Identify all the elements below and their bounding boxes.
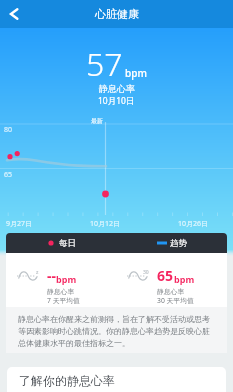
- staticText: --: [47, 266, 56, 285]
- staticText: bpm: [174, 273, 195, 285]
- button[interactable]: z: [6, 253, 116, 307]
- staticText: 每日: [59, 238, 76, 249]
- staticText: 30 天平均值: [157, 296, 194, 305]
- staticText: 65: [157, 266, 174, 285]
- staticText: 10月26日: [178, 219, 209, 229]
- staticText: 心脏健康: [95, 7, 139, 21]
- staticText: 静息心率在你醒来之前测得，旨在了解不受活动或思考等因素影响时心跳情况。你的静息心…: [18, 314, 211, 348]
- staticText: 30: [143, 269, 149, 276]
- staticText: 9月27日: [6, 219, 33, 229]
- staticText: 57: [86, 42, 123, 86]
- staticText: 趋势: [170, 238, 187, 249]
- staticText: 静息心率: [47, 287, 75, 296]
- staticText: bpm: [56, 273, 77, 285]
- staticText: 了解你的静息心率: [19, 373, 115, 388]
- staticText: 7 天平均值: [47, 296, 80, 305]
- button[interactable]: 30: [116, 253, 227, 307]
- staticText: 10月12日: [90, 219, 121, 229]
- staticText: 80: [4, 125, 13, 135]
- staticText: bpm: [125, 66, 147, 80]
- button[interactable]: 每日: [6, 233, 116, 253]
- staticText: 65: [4, 170, 13, 180]
- staticText: 10月10日: [98, 95, 135, 107]
- staticText: 静息心率: [157, 287, 185, 296]
- button[interactable]: Back: [0, 0, 28, 28]
- staticText: 静息心率: [99, 83, 135, 94]
- staticText: 最新: [91, 117, 103, 125]
- staticText: z: [36, 269, 39, 276]
- button[interactable]: 趋势: [116, 233, 227, 253]
